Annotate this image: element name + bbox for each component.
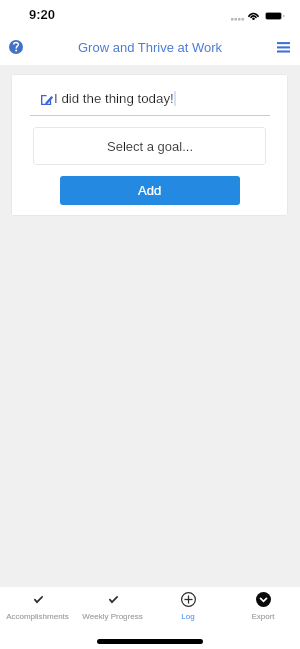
button[interactable]: Add xyxy=(60,176,240,205)
staticText: Weekly Progress xyxy=(82,612,143,621)
staticText: I did the thing today! xyxy=(54,91,174,106)
button[interactable]: Select a goal... xyxy=(33,127,266,165)
button[interactable]: Log xyxy=(150,587,225,649)
button[interactable]: Weekly Progress xyxy=(75,587,150,649)
button[interactable]: Accomplishments xyxy=(0,587,75,649)
staticText: Select a goal... xyxy=(107,139,193,154)
staticText: Add xyxy=(138,183,162,198)
staticText: Accomplishments xyxy=(6,612,69,621)
staticText: Export xyxy=(251,612,275,621)
button[interactable]: Help xyxy=(2,33,30,61)
staticText: Grow and Thrive at Work xyxy=(78,40,223,55)
button[interactable]: Export xyxy=(225,587,300,649)
staticText: Log xyxy=(181,612,195,621)
button[interactable]: Menu xyxy=(269,33,297,61)
staticText: 9:20 xyxy=(29,7,56,22)
